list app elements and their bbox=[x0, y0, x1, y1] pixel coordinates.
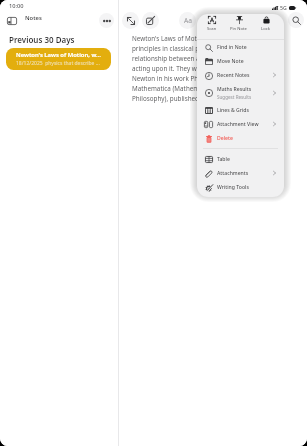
staticText: Find in Note bbox=[217, 44, 247, 51]
staticText: 10:00 bbox=[9, 2, 24, 10]
staticText: Newton in his work Philosophiae bbox=[132, 74, 229, 84]
staticText: Philosophy), published in 1687. bbox=[132, 94, 224, 104]
button[interactable]: Expand note bbox=[122, 12, 139, 29]
staticText: Move Note bbox=[217, 58, 244, 65]
button[interactable]: Recent Notes bbox=[197, 68, 284, 82]
button[interactable]: Writing Tools bbox=[197, 180, 284, 194]
button[interactable]: Lines & Grids bbox=[197, 103, 284, 117]
staticText: Attachment View bbox=[217, 121, 259, 128]
button[interactable]: Delete bbox=[197, 131, 284, 145]
staticText: relationship between an object and bbox=[132, 54, 237, 64]
button[interactable]: Table bbox=[197, 152, 284, 166]
staticText: Pin Note bbox=[230, 26, 247, 32]
staticText: 5G bbox=[280, 4, 287, 11]
button[interactable]: Attachment View bbox=[197, 117, 284, 131]
button[interactable]: Attachments bbox=[197, 166, 284, 180]
staticText: Writing Tools bbox=[217, 184, 249, 191]
button[interactable]: Text formatting bbox=[179, 12, 196, 29]
staticText: Attachments bbox=[217, 170, 249, 177]
staticText: Aa bbox=[184, 16, 192, 25]
staticText: Newton's Laws of Motion, w... bbox=[16, 51, 101, 59]
button[interactable]: Find in Note bbox=[197, 40, 284, 54]
staticText: Recent Notes bbox=[217, 72, 250, 79]
button[interactable]: Toggle sidebar bbox=[3, 12, 21, 30]
staticText: Newton's Laws of Motion are three bbox=[132, 34, 235, 44]
staticText: Suggest Results bbox=[217, 94, 252, 100]
staticText: 18/12/2025 physics that describe ... bbox=[16, 60, 100, 67]
button[interactable]: Search bbox=[288, 12, 304, 28]
button[interactable]: Scan bbox=[198, 14, 225, 39]
staticText: Delete bbox=[217, 135, 233, 142]
button[interactable]: Newton's Laws of Motion, w... bbox=[6, 48, 111, 70]
staticText: acting upon it. They were formulated bbox=[132, 64, 242, 74]
staticText: Lock bbox=[261, 26, 270, 32]
button[interactable]: More options bbox=[99, 13, 114, 28]
staticText: Notes bbox=[25, 14, 42, 22]
button[interactable]: Maths Results bbox=[197, 82, 284, 103]
staticText: Maths Results bbox=[217, 86, 252, 93]
staticText: principles in classical physics that bbox=[132, 44, 231, 54]
staticText: Scan bbox=[207, 26, 217, 32]
button[interactable]: New note bbox=[142, 12, 159, 29]
button[interactable]: Lock bbox=[252, 14, 279, 39]
staticText: Lines & Grids bbox=[217, 107, 249, 114]
button[interactable]: Move Note bbox=[197, 54, 284, 68]
staticText: Mathematica (Mathematical Principles bbox=[132, 84, 246, 94]
staticText: Previous 30 Days bbox=[9, 34, 75, 45]
button[interactable]: Pin Note bbox=[225, 14, 252, 39]
staticText: Table bbox=[217, 156, 230, 163]
